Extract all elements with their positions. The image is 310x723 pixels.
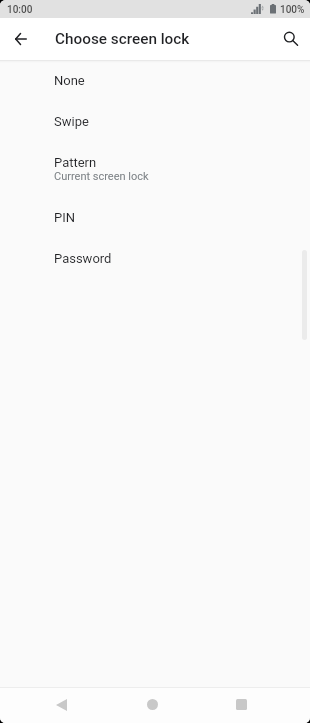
- staticText: Pattern: [54, 155, 97, 170]
- staticText: 100%: [280, 4, 305, 16]
- button[interactable]: Home: [134, 687, 170, 722]
- staticText: 10:00: [7, 4, 33, 16]
- button[interactable]: Swipe: [0, 101, 310, 142]
- staticText: Current screen lock: [54, 170, 149, 183]
- button[interactable]: Pattern: [0, 142, 310, 197]
- button[interactable]: Back: [0, 18, 42, 60]
- button[interactable]: None: [0, 60, 310, 101]
- button[interactable]: Password: [0, 238, 310, 279]
- staticText: Choose screen lock: [55, 30, 190, 48]
- staticText: Swipe: [54, 114, 89, 129]
- staticText: Password: [54, 251, 112, 266]
- staticText: None: [54, 73, 85, 88]
- button[interactable]: Recent apps: [223, 687, 259, 722]
- button[interactable]: Search: [270, 18, 310, 60]
- staticText: PIN: [54, 210, 76, 225]
- button[interactable]: PIN: [0, 197, 310, 238]
- button[interactable]: Back: [43, 687, 79, 722]
